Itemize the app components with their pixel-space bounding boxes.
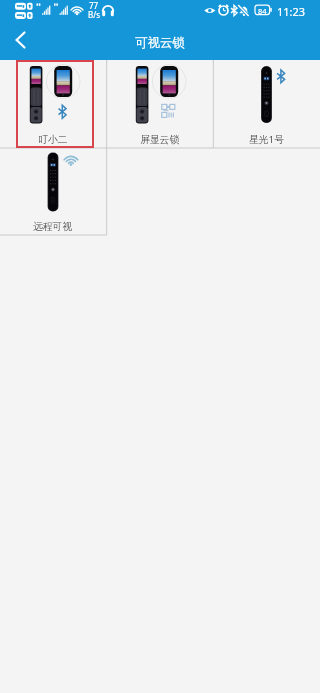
staticText: 77 xyxy=(89,0,99,11)
staticText: 可视云锁 xyxy=(135,35,185,51)
button[interactable]: 屏显云锁 xyxy=(106,60,213,148)
staticText: 84 xyxy=(258,6,267,16)
button[interactable]: 远程可视 xyxy=(0,148,106,235)
staticText: 屏显云锁 xyxy=(140,134,180,146)
button[interactable]: 叮小二 xyxy=(0,60,106,148)
button[interactable]: Back xyxy=(0,21,42,60)
staticText: B/s xyxy=(88,9,101,20)
button[interactable]: 星光1号 xyxy=(213,60,320,148)
staticText: 远程可视 xyxy=(33,221,73,233)
staticText: 叮小二 xyxy=(38,134,68,146)
staticText: 星光1号 xyxy=(249,133,284,146)
staticText: 11:23 xyxy=(277,4,306,19)
